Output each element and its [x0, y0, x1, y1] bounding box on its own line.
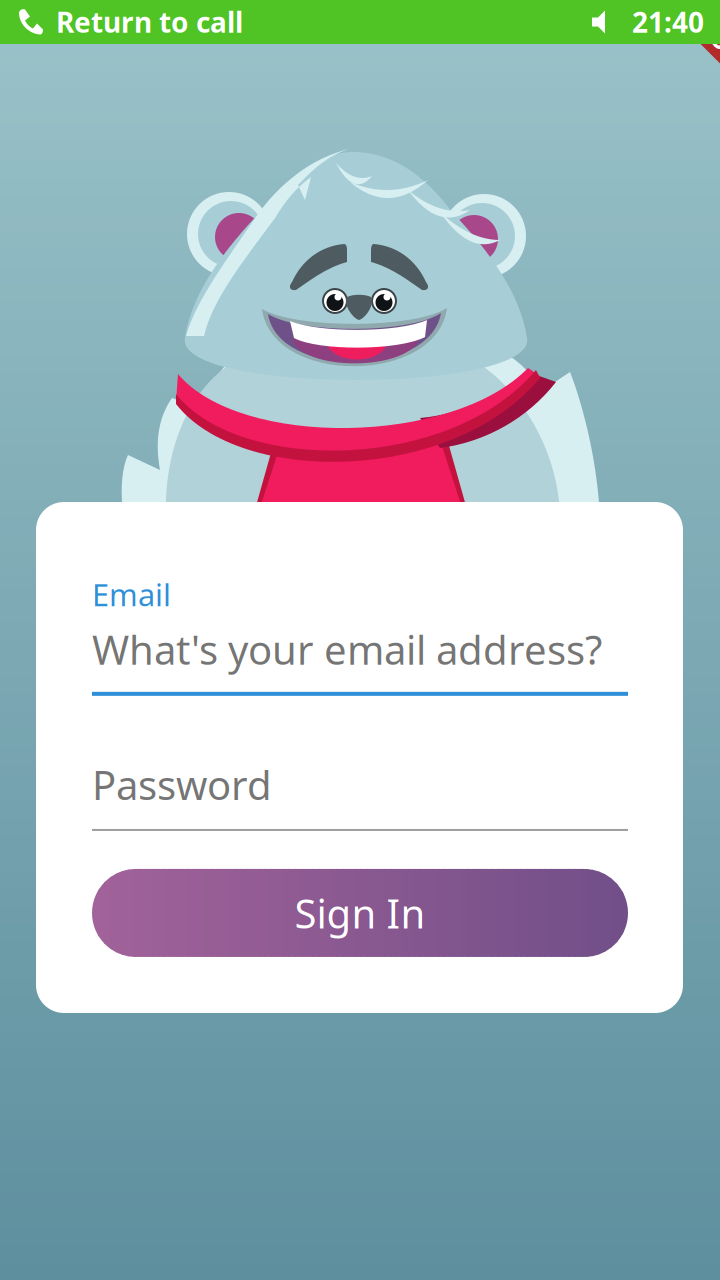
staticText: Email	[92, 574, 171, 615]
staticText: Return to call	[56, 3, 243, 41]
staticText: Sign In	[294, 886, 425, 939]
staticText: What's your email address?	[92, 623, 602, 676]
staticText: 21:40	[632, 3, 704, 41]
button[interactable]: Sign In	[92, 869, 628, 957]
staticText: DEBUG	[666, 11, 720, 45]
staticText: Password	[92, 758, 272, 811]
